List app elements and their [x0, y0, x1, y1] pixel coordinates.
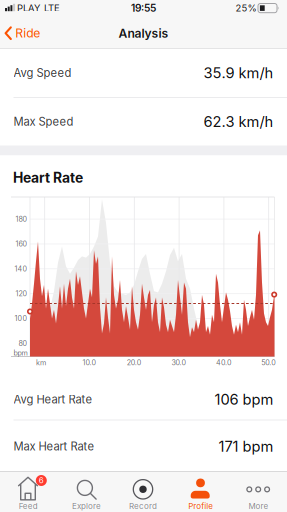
button[interactable]: More	[230, 472, 287, 512]
staticText: 19:55	[131, 2, 156, 14]
staticText: Avg Heart Rate	[13, 393, 92, 406]
staticText: 30.0	[172, 358, 187, 367]
staticText: Avg Speed	[13, 66, 71, 80]
button[interactable]: Record	[115, 472, 172, 512]
staticText: Record	[129, 501, 157, 511]
button[interactable]: Explore	[57, 472, 115, 512]
button[interactable]: Ride	[0, 16, 40, 48]
button[interactable]: Avg Speed	[0, 49, 287, 97]
staticText: 140	[14, 264, 27, 273]
staticText: Ride	[15, 26, 40, 41]
staticText: Feed	[19, 501, 38, 511]
staticText: Explore	[72, 501, 101, 511]
staticText: Max Heart Rate	[13, 440, 94, 453]
staticText: 50.0	[261, 358, 276, 367]
staticText: 25%	[235, 2, 256, 14]
staticText: 62.3 km/h	[203, 113, 273, 130]
staticText: More	[248, 501, 268, 511]
button[interactable]: Max Speed	[0, 98, 287, 145]
staticText: 80	[18, 339, 27, 348]
staticText: 100	[14, 314, 27, 323]
staticText: PLAY	[17, 2, 40, 14]
staticText: bpm	[13, 349, 27, 357]
button[interactable]: Max Heart Rate	[0, 426, 287, 466]
staticText: km	[36, 358, 46, 367]
staticText: 20.0	[127, 358, 142, 367]
staticText: 40.0	[216, 358, 232, 367]
staticText: Analysis	[118, 26, 168, 41]
staticText: 106 bpm	[214, 391, 273, 408]
button[interactable]: Profile	[172, 472, 230, 512]
staticText: 171 bpm	[218, 438, 273, 455]
staticText: 10.0	[82, 358, 96, 367]
staticText: 6	[39, 475, 44, 485]
staticText: Max Speed	[13, 115, 73, 128]
staticText: Profile	[188, 501, 213, 511]
staticText: 180	[15, 215, 27, 223]
staticText: 120	[15, 289, 27, 298]
button[interactable]: 6	[0, 472, 57, 512]
staticText: Heart Rate	[13, 169, 83, 186]
staticText: 160	[15, 240, 27, 248]
button[interactable]: Avg Heart Rate	[0, 379, 287, 419]
staticText: LTE	[44, 2, 60, 14]
staticText: 35.9 km/h	[203, 64, 273, 82]
